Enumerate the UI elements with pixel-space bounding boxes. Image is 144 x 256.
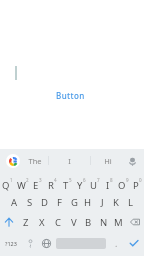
button[interactable]: ?123 [0,232,22,254]
button[interactable]: Enter [124,232,144,254]
button[interactable]: Q [0,172,15,192]
staticText: Button [56,90,85,101]
staticText: W [17,179,26,192]
button[interactable]: V [66,212,81,232]
staticText: 0 [139,177,142,183]
staticText: M [114,216,123,229]
staticText: ?123 [5,240,17,247]
staticText: 8 [110,177,113,183]
button[interactable]: T [60,172,74,192]
staticText: R [48,179,54,192]
button[interactable]: Shift [0,212,18,232]
button[interactable]: I [48,149,90,172]
button[interactable]: . [108,232,124,254]
staticText: Z [23,216,29,229]
button[interactable]: I [102,172,116,192]
staticText: . [115,237,118,249]
staticText: E [33,179,39,192]
button[interactable]: S [22,192,37,212]
button[interactable]: Emoji [22,232,38,254]
button[interactable]: Voice input [124,153,140,169]
button[interactable]: E [30,172,45,192]
staticText: S [27,196,33,209]
button[interactable]: L [123,192,137,212]
staticText: 6 [83,177,86,183]
button[interactable]: X [34,212,50,232]
button[interactable]: The [21,149,48,172]
staticText: U [90,179,97,192]
button[interactable]: G [67,192,81,212]
staticText: F [57,196,62,209]
staticText: Y [77,179,83,192]
staticText: Q [2,179,10,192]
button[interactable]: C [50,212,66,232]
button[interactable]: N [96,212,111,232]
staticText: 1 [10,177,13,183]
button[interactable]: Change language [38,232,54,254]
staticText: H [84,196,92,209]
staticText: O [118,179,126,192]
staticText: 4 [54,177,57,183]
button[interactable]: W [15,172,30,192]
staticText: J [101,196,104,209]
button[interactable]: O [116,172,130,192]
staticText: V [71,216,77,229]
button[interactable]: F [52,192,67,212]
staticText: The [28,156,42,166]
staticText: C [55,216,62,229]
button[interactable]: D [37,192,52,212]
button[interactable]: A [7,192,22,212]
button[interactable]: M [111,212,126,232]
staticText: T [63,179,69,192]
staticText: 2 [26,177,29,183]
button[interactable]: H [81,192,95,212]
button[interactable]: U [88,172,102,192]
button[interactable]: J [95,192,109,212]
staticText: P [133,179,139,192]
staticText: 9 [126,177,129,183]
staticText: 7 [97,177,100,183]
button[interactable]: Z [18,212,34,232]
staticText: N [100,216,108,229]
button[interactable]: P [130,172,144,192]
staticText: I [68,156,71,166]
button[interactable]: B [81,212,96,232]
staticText: Hi [104,156,112,166]
staticText: I [106,179,110,192]
button[interactable]: R [45,172,60,192]
staticText: G [71,196,78,209]
button[interactable]: Y [74,172,88,192]
button[interactable]: Google search [6,154,20,168]
staticText: B [85,216,92,229]
staticText: 3 [39,177,42,183]
staticText: D [41,196,48,209]
staticText: A [11,196,18,209]
button[interactable]: Backspace [126,212,144,232]
staticText: X [39,216,45,229]
button[interactable]: K [109,192,123,212]
button[interactable]: Button [52,88,89,103]
button[interactable]: Hi [90,149,126,172]
staticText: L [128,196,133,209]
staticText: 5 [69,177,72,183]
staticText: K [113,196,119,209]
